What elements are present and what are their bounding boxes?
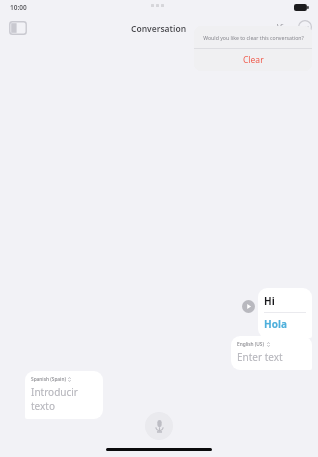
staticText: View: [277, 22, 295, 33]
button[interactable]: View: [275, 20, 297, 35]
staticText: Would you like to clear this conversatio…: [203, 34, 304, 41]
button[interactable]: Clear: [194, 49, 312, 71]
button[interactable]: Toggle sidebar: [8, 20, 28, 36]
button[interactable]: Microphone: [145, 412, 173, 440]
staticText: Enter text: [237, 350, 283, 364]
staticText: Spanish (Spain): [31, 376, 66, 383]
staticText: Hi: [264, 294, 275, 308]
staticText: Clear: [243, 54, 264, 66]
button[interactable]: Spanish (Spain): [25, 371, 103, 419]
button[interactable]: Play translation: [242, 300, 255, 313]
button[interactable]: English (US): [231, 336, 312, 370]
staticText: Hola: [264, 317, 287, 331]
staticText: English (US): [237, 341, 265, 348]
button[interactable]: More options: [297, 19, 312, 34]
staticText: 10:00: [10, 3, 27, 12]
staticText: Introducir texto: [31, 385, 97, 413]
button[interactable]: Hi: [258, 288, 312, 338]
staticText: Conversation: [131, 23, 187, 35]
